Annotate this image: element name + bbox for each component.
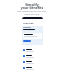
button[interactable] [23, 59, 42, 65]
staticText: Simplify your benefits [0, 2, 64, 10]
staticText: One simple place for your plan, claims a… [0, 10, 64, 15]
staticText: Your plan [23, 22, 34, 25]
button[interactable] [23, 47, 42, 53]
button[interactable]: View plan [23, 40, 31, 42]
button[interactable] [23, 65, 42, 71]
button[interactable] [23, 53, 42, 59]
